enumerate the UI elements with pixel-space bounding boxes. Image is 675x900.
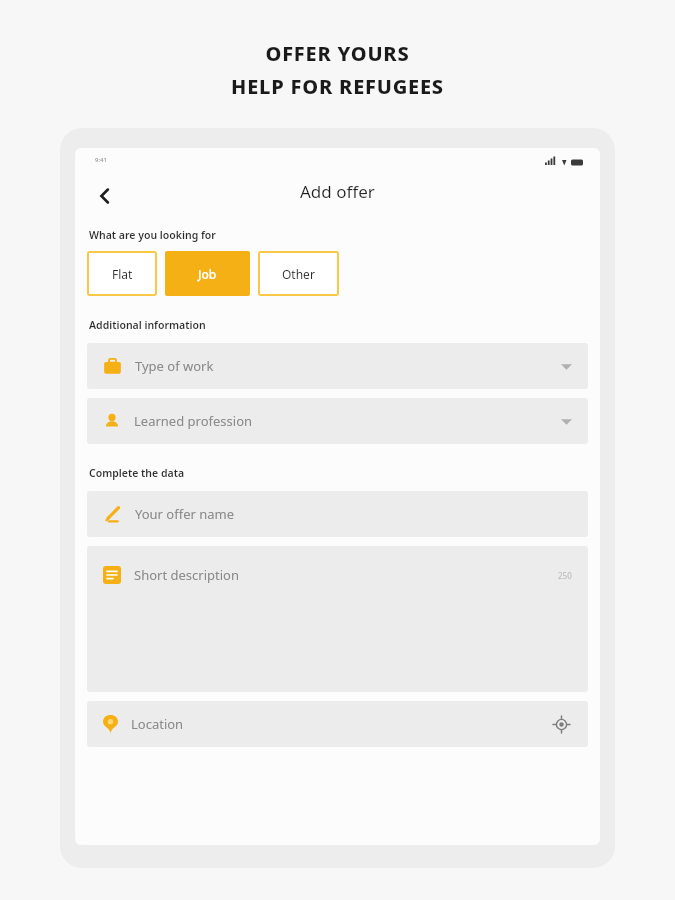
button[interactable]: Job [165,251,250,296]
staticText: Flat [112,266,133,282]
staticText: Short description [134,566,239,584]
staticText: Other [282,266,315,282]
button[interactable]: Learned profession [87,398,588,444]
staticText: Location [131,715,184,733]
staticText: Job [198,266,217,282]
staticText: Complete the data [89,466,185,480]
staticText: What are you looking for [89,228,216,242]
staticText: 9:41 [95,156,107,164]
staticText: OFFER YOURS [265,40,410,67]
button[interactable]: Other [258,251,339,296]
staticText: Add offer [300,180,375,203]
staticText: Learned profession [134,412,253,430]
staticText: Your offer name [135,505,235,523]
button[interactable]: Short description [87,546,588,692]
button[interactable]: Location [87,701,588,747]
staticText: Additional information [89,318,206,332]
button[interactable]: Use my location [550,713,572,735]
staticText: 250 [558,570,572,581]
staticText: Type of work [135,357,214,375]
staticText: HELP FOR REFUGEES [231,73,444,100]
button[interactable]: Your offer name [87,491,588,537]
button[interactable]: Flat [87,251,157,296]
button[interactable]: Type of work [87,343,588,389]
button[interactable]: Back [83,174,127,218]
